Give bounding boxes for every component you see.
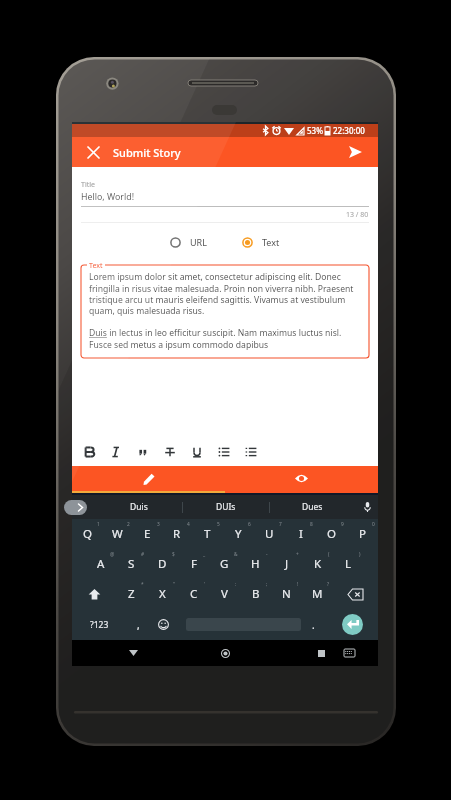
staticText: DUIs xyxy=(216,501,236,513)
staticText: " xyxy=(173,581,175,588)
staticText: G xyxy=(220,556,229,572)
staticText: 6 xyxy=(248,521,251,528)
button[interactable]: Underline xyxy=(183,438,210,466)
staticText: , xyxy=(137,618,140,632)
button[interactable]: X xyxy=(147,579,178,609)
button[interactable]: Back xyxy=(120,640,146,666)
staticText: * xyxy=(141,581,144,588)
button[interactable]: Switch keyboard xyxy=(336,640,362,666)
staticText: 53% xyxy=(307,125,323,136)
staticText: D xyxy=(158,556,167,572)
button[interactable]: B xyxy=(240,579,271,609)
staticText: ? xyxy=(327,581,330,588)
button[interactable]: Home xyxy=(212,640,238,666)
staticText: M xyxy=(312,586,323,602)
button[interactable]: Dues xyxy=(269,495,356,519)
staticText: Lorem ipsum dolor sit amet, consectetur … xyxy=(89,271,362,316)
button[interactable]: Strikethrough xyxy=(156,438,183,466)
button[interactable]: R xyxy=(162,519,192,549)
staticText: N xyxy=(282,586,291,602)
button[interactable]: F xyxy=(178,549,209,579)
button[interactable]: E xyxy=(132,519,162,549)
staticText: Duis xyxy=(130,501,148,513)
staticText: ' xyxy=(204,581,206,588)
button[interactable]: Y xyxy=(223,519,254,549)
button[interactable]: O xyxy=(316,519,347,549)
staticText: ?123 xyxy=(90,619,109,631)
staticText: A xyxy=(97,556,105,572)
staticText: 3 xyxy=(157,521,160,528)
button[interactable]: G xyxy=(209,549,240,579)
staticText: 9 xyxy=(341,521,344,528)
button[interactable]: Emoji xyxy=(150,609,177,640)
staticText: Hello, World! xyxy=(81,191,134,203)
button[interactable]: Close xyxy=(78,137,108,167)
staticText: R xyxy=(173,526,181,542)
staticText: - xyxy=(266,551,268,558)
staticText: P xyxy=(359,526,366,542)
staticText: 7 xyxy=(279,521,282,528)
button[interactable]: Quote xyxy=(129,438,156,466)
button[interactable]: I xyxy=(285,519,316,549)
staticText: O xyxy=(327,526,336,542)
button[interactable]: Numbered list xyxy=(237,438,264,466)
button[interactable]: J xyxy=(271,549,302,579)
button[interactable]: Duis xyxy=(95,495,182,519)
staticText: 1 xyxy=(97,521,100,528)
staticText: X xyxy=(159,586,166,602)
button[interactable]: L xyxy=(333,549,364,579)
button[interactable]: Text xyxy=(242,236,280,248)
button[interactable]: S xyxy=(116,549,147,579)
button[interactable]: Edit xyxy=(72,466,225,493)
button[interactable]: Z xyxy=(116,579,147,609)
staticText: 13 / 80 xyxy=(346,210,369,220)
staticText: 8 xyxy=(310,521,313,528)
button[interactable]: Send xyxy=(340,137,370,167)
staticText: L xyxy=(345,556,352,572)
button[interactable]: Q xyxy=(72,519,102,549)
button[interactable]: Italic xyxy=(102,438,129,466)
button[interactable]: Shift xyxy=(72,579,116,609)
button[interactable]: C xyxy=(178,579,209,609)
staticText: Duis xyxy=(89,327,107,339)
button[interactable]: Bold xyxy=(75,438,102,466)
staticText: . xyxy=(312,618,315,632)
staticText: Fusce sed metus a ipsum commodo dapibus xyxy=(89,339,269,351)
button[interactable]: Comma xyxy=(126,609,150,640)
button[interactable]: Voice input xyxy=(356,495,378,519)
button[interactable]: URL xyxy=(170,236,207,248)
staticText: Y xyxy=(235,526,242,542)
staticText: ! xyxy=(297,581,299,588)
staticText: URL xyxy=(190,236,207,248)
button[interactable]: M xyxy=(302,579,333,609)
staticText: S xyxy=(128,556,135,572)
button[interactable]: Period xyxy=(301,609,326,640)
button[interactable]: P xyxy=(347,519,378,549)
button[interactable]: T xyxy=(192,519,223,549)
staticText: 2 xyxy=(127,521,130,528)
button[interactable]: Recents xyxy=(308,640,334,666)
button[interactable]: K xyxy=(302,549,333,579)
staticText: : xyxy=(235,581,237,588)
button[interactable]: DUIs xyxy=(182,495,269,519)
staticText: 22:30:00 xyxy=(333,125,365,136)
staticText: Text xyxy=(262,236,280,248)
button[interactable]: Enter xyxy=(342,614,363,635)
button[interactable]: ?123 xyxy=(72,609,126,640)
staticText: ( xyxy=(328,551,330,558)
staticText: B xyxy=(252,586,260,602)
button[interactable]: N xyxy=(271,579,302,609)
button[interactable]: Backspace xyxy=(333,579,378,609)
button[interactable]: More suggestions xyxy=(64,500,87,515)
button[interactable]: V xyxy=(209,579,240,609)
button[interactable]: W xyxy=(102,519,132,549)
staticText: Q xyxy=(83,526,92,542)
button[interactable]: A xyxy=(86,549,116,579)
staticText: 5 xyxy=(217,521,220,528)
button[interactable]: H xyxy=(240,549,271,579)
button[interactable]: Bulleted list xyxy=(210,438,237,466)
button[interactable]: D xyxy=(147,549,178,579)
button[interactable]: Preview xyxy=(225,466,378,493)
button[interactable]: U xyxy=(254,519,285,549)
